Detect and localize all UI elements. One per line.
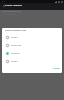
button[interactable]: Navigate up [1,3,6,8]
button[interactable]: 4G/3G/2G [2,49,62,57]
button[interactable]: CANCEL [52,66,61,70]
staticText: LTE (recommended) [2,13,17,15]
button[interactable]: 3G only [2,57,62,65]
staticText: 4G/3G/2G [11,52,20,55]
staticText: Preferred network type [2,10,21,12]
staticText: Mobile network [5,4,22,7]
button[interactable]: 3G/2G auto [2,41,62,49]
staticText: 3G/2G auto [11,44,22,47]
staticText: 2G only [11,36,18,39]
staticText: CANCEL [53,67,60,69]
staticText: 3G only [11,60,18,63]
button[interactable]: 2G only [2,33,62,41]
staticText: Preferred network type [5,29,27,32]
